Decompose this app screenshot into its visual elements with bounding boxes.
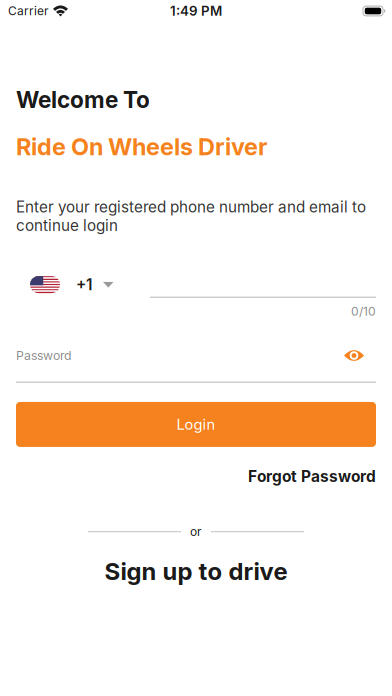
button[interactable]: +1 — [16, 273, 113, 297]
staticText: Ride On Wheels Driver — [16, 132, 267, 161]
staticText: 1:49 PM — [170, 3, 222, 19]
staticText: Login — [176, 415, 215, 433]
button[interactable]: Sign up to drive — [104, 557, 287, 586]
staticText: +1 — [76, 275, 92, 294]
staticText: Welcome To — [16, 86, 150, 113]
button[interactable]: Forgot Password — [248, 467, 376, 486]
staticText: 0/10 — [351, 304, 376, 318]
staticText: Carrier — [8, 4, 49, 18]
staticText: or — [190, 524, 202, 539]
button[interactable]: Login — [16, 402, 376, 447]
button[interactable]: Show password — [344, 349, 376, 362]
staticText: Forgot Password — [248, 467, 376, 486]
staticText: Enter your registered phone number and e… — [16, 198, 366, 235]
staticText: Password — [16, 348, 72, 363]
staticText: Sign up to drive — [104, 557, 287, 586]
